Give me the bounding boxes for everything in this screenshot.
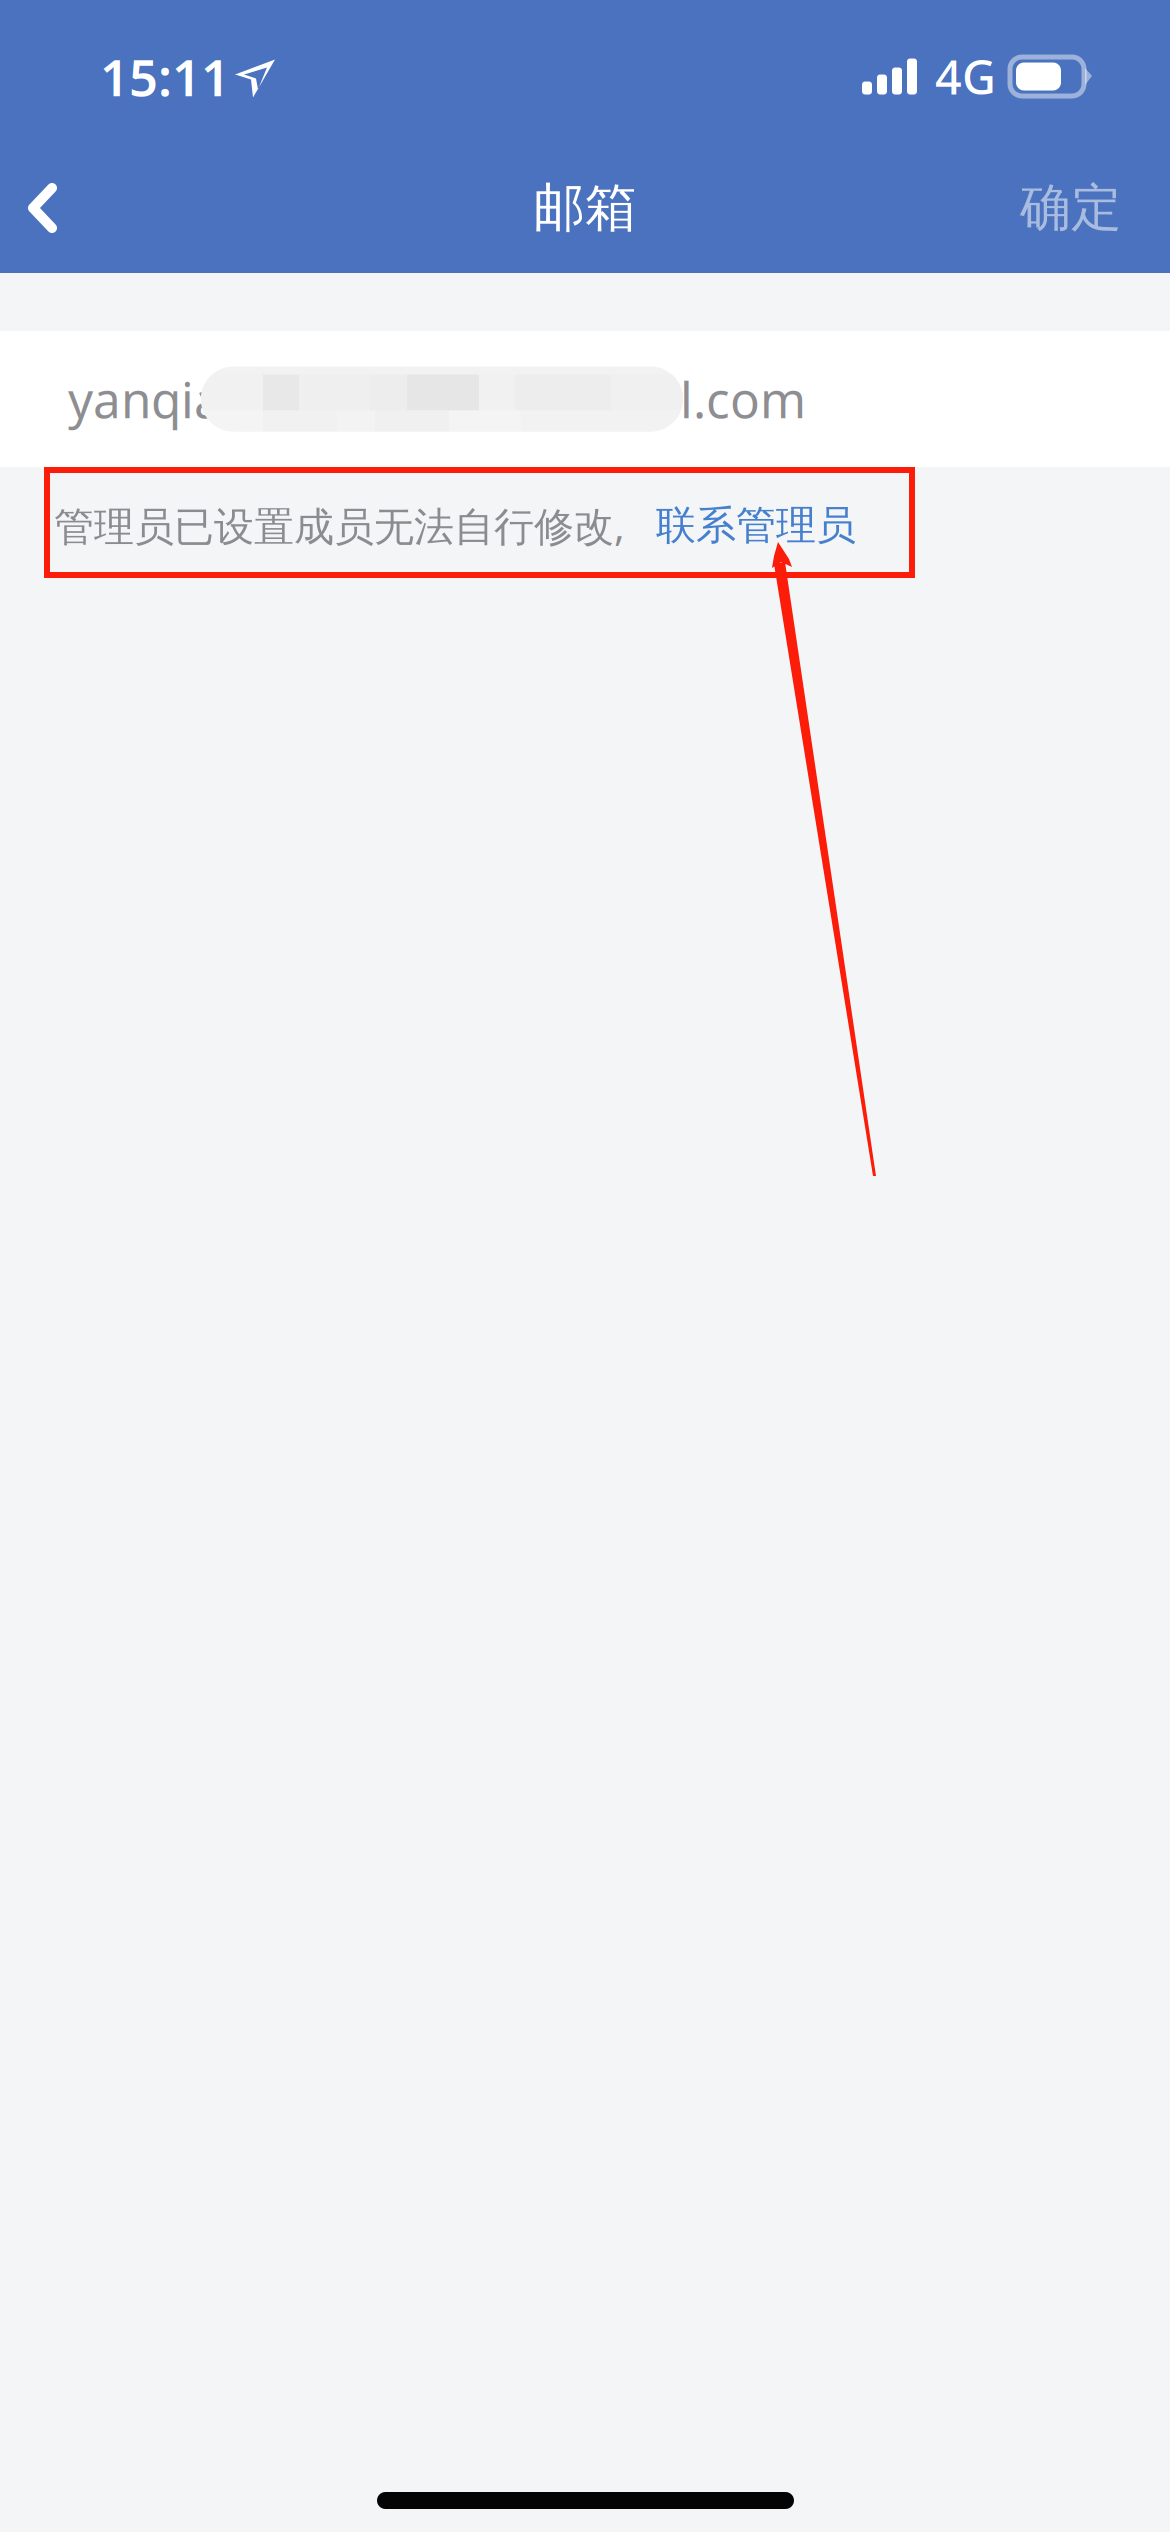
staticText: 确定 [1020,177,1122,239]
staticText: l.com [680,366,806,432]
button[interactable]: 确定 [980,141,1170,275]
staticText: 邮箱 [533,176,637,240]
button[interactable]: 联系管理员 [625,481,876,570]
button[interactable]: 返回 [0,143,101,273]
staticText: yanqia [68,366,222,432]
staticText: 联系管理员 [656,501,856,550]
staticText: 管理员已设置成员无法自行修改, [54,499,625,552]
button[interactable]: 邮箱地址 [0,331,1170,467]
staticText: 15:11 [100,43,230,110]
staticText: 4G [935,45,996,107]
